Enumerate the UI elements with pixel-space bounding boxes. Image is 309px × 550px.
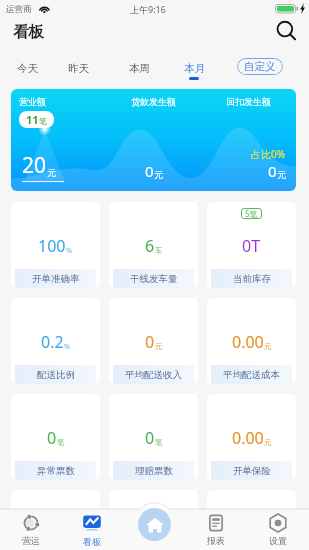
staticText: 0 bbox=[47, 427, 57, 449]
staticText: 运营商 bbox=[6, 4, 32, 15]
staticText: 干线发车量 bbox=[130, 273, 178, 285]
staticText: 元 bbox=[47, 167, 56, 178]
button[interactable]: 0 bbox=[109, 394, 198, 480]
staticText: 笔 bbox=[39, 116, 47, 126]
staticText: 5笔 bbox=[245, 208, 258, 219]
button[interactable]: 报表 bbox=[185, 509, 247, 550]
staticText: 0 bbox=[268, 161, 277, 181]
button[interactable]: 5笔 bbox=[207, 202, 296, 288]
staticText: 异常票数 bbox=[37, 465, 75, 477]
staticText: 车 bbox=[155, 246, 163, 255]
button[interactable] bbox=[207, 490, 296, 550]
button[interactable]: 0 bbox=[109, 298, 198, 384]
button[interactable]: 0.00 bbox=[207, 298, 296, 384]
staticText: 6 bbox=[145, 235, 155, 257]
button[interactable]: 营运 bbox=[0, 509, 61, 550]
button[interactable] bbox=[11, 490, 100, 550]
button[interactable]: 本周 bbox=[118, 50, 160, 89]
button[interactable]: 6 bbox=[109, 202, 198, 288]
staticText: 本周 bbox=[129, 62, 150, 75]
button[interactable]: 0.00 bbox=[207, 394, 296, 480]
staticText: 笔 bbox=[57, 438, 65, 447]
button[interactable]: 设置 bbox=[247, 509, 309, 550]
button[interactable]: 自定义 bbox=[237, 58, 283, 75]
staticText: 元 bbox=[277, 169, 286, 180]
button[interactable]: 0 bbox=[11, 394, 100, 480]
staticText: 笔 bbox=[155, 438, 163, 447]
staticText: 0T bbox=[242, 235, 261, 257]
staticText: 今天 bbox=[17, 62, 38, 75]
button[interactable]: Search bbox=[268, 16, 298, 46]
staticText: 20 bbox=[22, 151, 47, 180]
staticText: 本月 bbox=[184, 62, 205, 75]
staticText: 货款发生额 bbox=[131, 96, 176, 107]
staticText: 0.00 bbox=[232, 427, 264, 449]
button[interactable]: Home bbox=[138, 508, 171, 541]
button[interactable] bbox=[109, 490, 198, 550]
staticText: % bbox=[66, 245, 73, 255]
button[interactable]: 0.2 bbox=[11, 298, 100, 384]
staticText: 平均配送成本 bbox=[223, 369, 280, 381]
staticText: 元 bbox=[154, 169, 163, 180]
staticText: 0.00 bbox=[232, 331, 264, 353]
staticText: 平均配送收入 bbox=[125, 369, 182, 381]
staticText: 营业额 bbox=[19, 96, 46, 107]
staticText: 昨天 bbox=[68, 62, 89, 75]
staticText: 11 bbox=[26, 112, 39, 127]
button[interactable]: 今天 bbox=[6, 50, 48, 89]
button[interactable]: 昨天 bbox=[57, 50, 99, 89]
staticText: 元 bbox=[155, 342, 163, 351]
staticText: 开单保险 bbox=[233, 465, 271, 477]
staticText: 0 bbox=[145, 161, 154, 181]
button[interactable]: 营业额 bbox=[11, 89, 296, 191]
staticText: 上午9:16 bbox=[130, 3, 166, 15]
staticText: 报表 bbox=[207, 535, 225, 546]
staticText: 营运 bbox=[22, 535, 40, 546]
staticText: 配送比例 bbox=[37, 369, 75, 381]
staticText: 回扣发生额 bbox=[226, 96, 271, 107]
staticText: 100 bbox=[38, 235, 66, 257]
button[interactable]: 100 bbox=[11, 202, 100, 288]
button[interactable]: 看板 bbox=[61, 509, 123, 550]
button[interactable]: 本月 bbox=[173, 50, 215, 89]
staticText: 0 bbox=[145, 331, 155, 353]
staticText: 元 bbox=[264, 342, 272, 351]
staticText: 看板 bbox=[13, 22, 44, 42]
staticText: 开单准确率 bbox=[32, 273, 80, 285]
staticText: 设置 bbox=[269, 535, 287, 546]
staticText: 0.2 bbox=[41, 331, 64, 353]
staticText: % bbox=[64, 341, 71, 351]
staticText: 自定义 bbox=[244, 60, 276, 73]
staticText: 理赔票数 bbox=[135, 465, 173, 477]
staticText: 看板 bbox=[83, 536, 101, 547]
staticText: 0 bbox=[145, 427, 155, 449]
staticText: 占比0% bbox=[251, 147, 286, 161]
staticText: 元 bbox=[264, 438, 272, 447]
staticText: 当前库存 bbox=[233, 273, 271, 285]
